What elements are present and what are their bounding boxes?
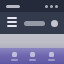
button[interactable]: Menu (6, 17, 18, 29)
button[interactable]: Favorites (24, 48, 40, 64)
button[interactable]: Search (51, 20, 58, 27)
button[interactable]: Home (6, 48, 22, 64)
button[interactable]: Profile (43, 48, 59, 64)
